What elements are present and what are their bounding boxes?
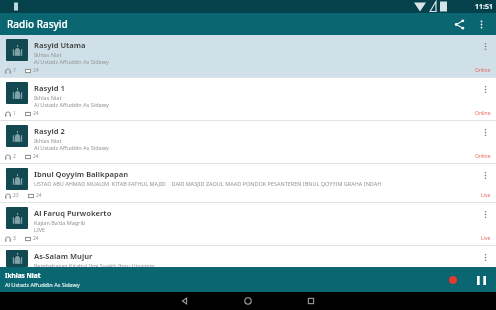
button[interactable]: Item menu <box>478 207 492 221</box>
staticText: 2 <box>13 153 16 160</box>
staticText: 11:51 <box>475 2 493 12</box>
button[interactable]: Item menu <box>478 168 492 182</box>
button[interactable]: Rasyid Utama <box>0 35 496 78</box>
button[interactable]: Pause <box>472 271 490 289</box>
staticText: 24 <box>33 153 39 160</box>
button[interactable]: Al Faruq Purwokerto <box>0 203 496 246</box>
staticText: 23 <box>13 192 19 199</box>
staticText: 3 <box>13 235 16 242</box>
button[interactable]: Recent apps <box>302 292 320 310</box>
button[interactable]: Home <box>239 292 257 310</box>
staticText: Online <box>475 67 491 74</box>
staticText: Pembahasan Kitabul Ilmi Syaikh Ibnu Utsa… <box>34 262 155 267</box>
staticText: Ibnul Qoyyim Balikpapan <box>34 169 129 179</box>
staticText: USTAD ABU AHMAD MUALIM KITAB FATHUL MAJI… <box>34 180 382 187</box>
staticText: Al Ustadz Affuddin As Sidawy <box>34 144 109 151</box>
button[interactable]: Back <box>176 292 194 310</box>
button[interactable]: Item menu <box>478 39 492 53</box>
staticText: 1 <box>13 110 16 117</box>
button[interactable]: Rasyid 2 <box>0 121 496 164</box>
staticText: Al Faruq Purwokerto <box>34 208 112 218</box>
button[interactable]: Item menu <box>478 82 492 96</box>
staticText: As-Salam Mujur <box>34 251 93 261</box>
button[interactable]: Share <box>448 13 470 35</box>
staticText: Rasyid 1 <box>34 83 65 93</box>
staticText: Ikhlas Niat <box>34 94 62 101</box>
button[interactable]: More options <box>470 13 492 35</box>
button[interactable]: As-Salam Mujur <box>0 246 496 267</box>
staticText: 24 <box>36 192 42 199</box>
staticText: LIVE <box>34 226 46 233</box>
staticText: Al Ustadz Affuddin As Sidawy <box>5 281 80 288</box>
staticText: Online <box>475 153 491 160</box>
staticText: 24 <box>33 67 39 74</box>
staticText: Radio Rasyid <box>7 17 68 31</box>
staticText: 24 <box>33 235 39 242</box>
staticText: Live <box>481 192 491 199</box>
staticText: Online <box>475 110 491 117</box>
staticText: Ikhlas Niat <box>34 137 62 144</box>
staticText: Rasyid 2 <box>34 126 65 136</box>
staticText: Live <box>481 235 491 242</box>
staticText: Ikhlas Niat <box>34 51 62 58</box>
staticText: 24 <box>33 110 39 117</box>
button[interactable]: Item menu <box>478 250 492 264</box>
staticText: Ikhlas Niat <box>5 271 41 280</box>
staticText: Al Ustadz Affuddin As Sidawy <box>34 101 109 108</box>
staticText: Kajian Ba'da Magrib <box>34 219 86 226</box>
staticText: Rasyid Utama <box>34 40 86 50</box>
button[interactable]: Ibnul Qoyyim Balikpapan <box>0 164 496 203</box>
button[interactable]: Record <box>444 271 462 289</box>
staticText: Al Ustadz Affuddin As Sidawy <box>34 58 109 65</box>
button[interactable]: Rasyid 1 <box>0 78 496 121</box>
staticText: 7 <box>13 67 16 74</box>
button[interactable]: Item menu <box>478 125 492 139</box>
